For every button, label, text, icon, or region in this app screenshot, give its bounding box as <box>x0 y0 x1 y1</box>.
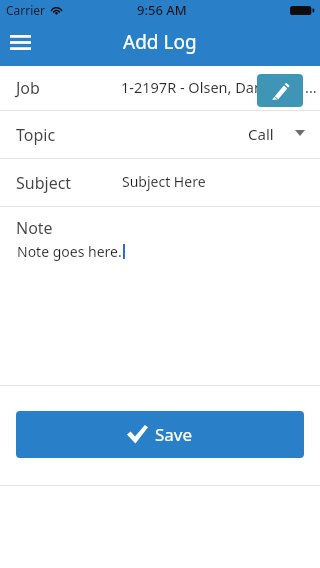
button[interactable]: Note <box>0 207 320 385</box>
button[interactable]: Save <box>16 411 304 458</box>
button[interactable]: Job <box>0 66 320 110</box>
staticText: 9:56 AM <box>137 1 187 19</box>
staticText: 1-2197R - Olsen, Dan <box>121 77 263 97</box>
staticText: Call <box>248 124 274 144</box>
button[interactable]: Edit job <box>257 74 303 107</box>
button[interactable]: Topic <box>0 111 320 158</box>
staticText: Topic <box>16 124 56 146</box>
staticText: Job <box>16 77 40 99</box>
staticText: Save <box>155 423 193 446</box>
staticText: Subject <box>16 172 72 194</box>
staticText: Subject Here <box>122 172 206 191</box>
staticText: Note goes here. <box>17 242 122 261</box>
button[interactable]: Menu <box>1 23 39 61</box>
staticText: Note <box>16 217 53 239</box>
button[interactable]: Subject <box>0 159 320 206</box>
staticText: ... <box>305 77 317 97</box>
staticText: Carrier <box>6 2 46 18</box>
staticText: Add Log <box>123 29 197 55</box>
